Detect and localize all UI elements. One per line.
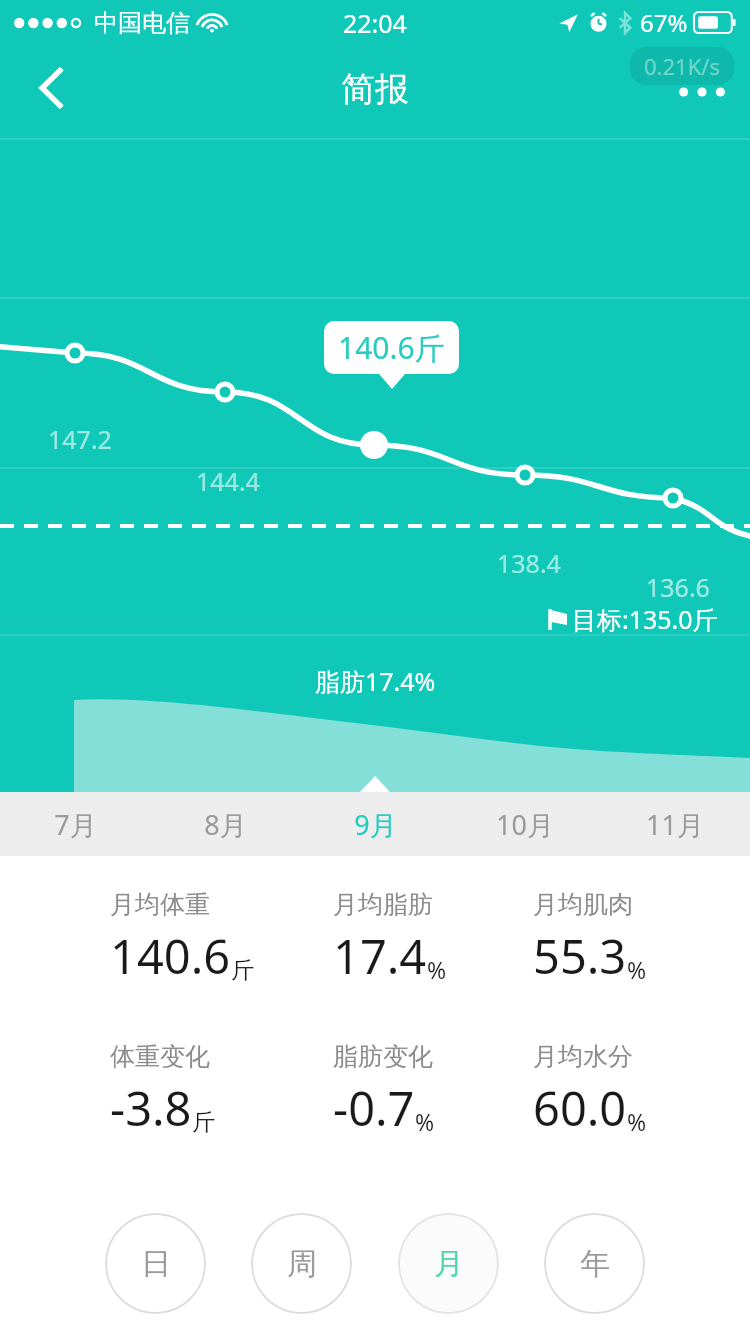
button[interactable]: 日 [105,1213,206,1314]
staticText: 月均体重 [110,889,210,920]
staticText: 147.2 [48,422,112,456]
staticText: 10月 [496,806,554,843]
staticText: 136.6 [646,570,710,604]
staticText: 0.21K/s [644,51,720,81]
button[interactable]: 月 [398,1213,499,1314]
staticText: 60.0 [533,1076,627,1140]
button[interactable]: More options [674,64,730,120]
staticText: 17.4 [333,924,427,988]
staticText: % [627,1106,647,1137]
staticText: 138.4 [497,546,561,580]
staticText: 144.4 [196,464,260,498]
staticText: 周 [287,1245,317,1283]
staticText: 体重变化 [110,1041,210,1072]
staticText: 9月 [354,806,397,843]
button[interactable]: 10月 [450,792,600,856]
staticText: 140.6斤 [338,327,445,368]
staticText: 中国电信 [94,8,190,38]
button[interactable]: 8月 [150,792,300,856]
staticText: 日 [141,1245,171,1283]
button[interactable]: 9月 [300,792,450,856]
staticText: 11月 [646,806,704,843]
staticText: 月 [434,1245,464,1283]
staticText: 月均水分 [533,1041,633,1072]
staticText: % [415,1106,435,1137]
staticText: 年 [580,1245,610,1283]
staticText: -3.8 [110,1076,192,1140]
button[interactable]: 7月 [0,792,150,856]
staticText: 7月 [54,806,97,843]
staticText: 8月 [204,806,247,843]
staticText: 月均肌肉 [533,889,633,920]
staticText: 简报 [341,68,409,111]
staticText: % [427,954,447,985]
button[interactable]: Back [22,58,82,118]
staticText: 目标:135.0斤 [572,602,718,636]
staticText: -0.7 [333,1076,415,1140]
button[interactable]: 周 [251,1213,352,1314]
button[interactable]: 11月 [600,792,750,856]
staticText: 脂肪变化 [333,1041,433,1072]
staticText: 月均脂肪 [333,889,433,920]
staticText: 斤 [231,956,254,985]
staticText: 22:04 [343,6,407,40]
staticText: 140.6 [110,924,231,988]
button[interactable]: 年 [544,1213,645,1314]
staticText: 斤 [192,1108,215,1137]
staticText: 55.3 [533,924,627,988]
staticText: 脂肪17.4% [315,664,436,698]
staticText: % [627,954,647,985]
staticText: 67% [640,6,688,39]
